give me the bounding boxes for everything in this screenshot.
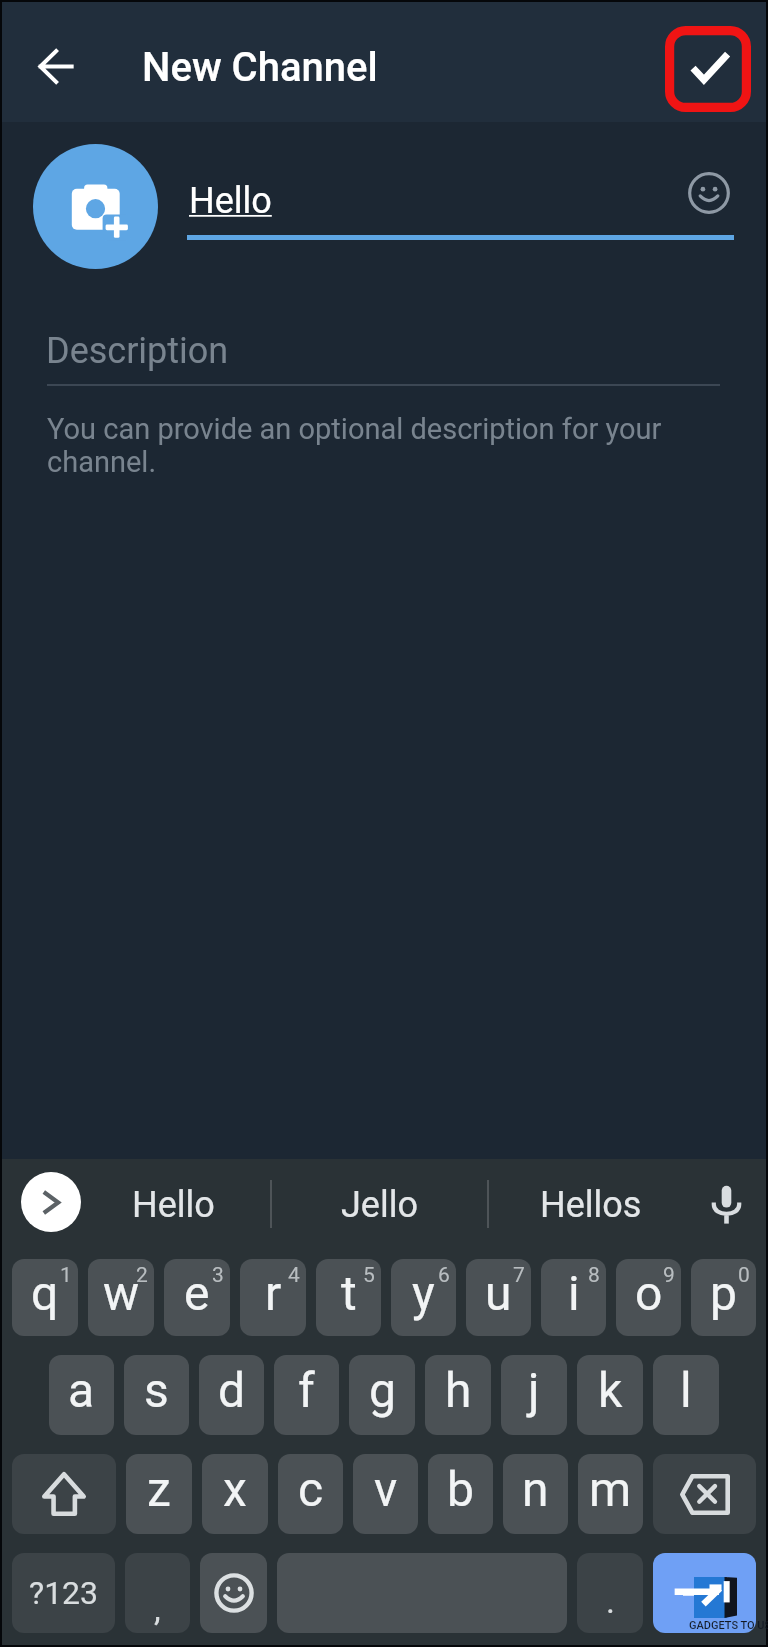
staticText: ?123 bbox=[29, 1574, 99, 1612]
staticText: 2 bbox=[136, 1263, 148, 1288]
staticText: q bbox=[31, 1265, 59, 1321]
button[interactable]: v bbox=[353, 1454, 418, 1534]
staticText: 3 bbox=[212, 1263, 224, 1288]
button[interactable]: Set channel photo bbox=[33, 144, 158, 269]
button[interactable]: w bbox=[88, 1259, 154, 1336]
button[interactable]: Emoji bbox=[200, 1553, 267, 1633]
staticText: . bbox=[606, 1581, 615, 1621]
staticText: 1 bbox=[60, 1263, 72, 1288]
staticText: m bbox=[589, 1461, 632, 1517]
staticText: h bbox=[445, 1362, 472, 1418]
staticText: Hello bbox=[189, 180, 272, 222]
staticText: p bbox=[710, 1265, 737, 1321]
staticText: You can provide an optional description … bbox=[47, 412, 672, 479]
button[interactable]: i bbox=[541, 1259, 606, 1336]
button[interactable]: h bbox=[425, 1355, 491, 1435]
staticText: i bbox=[568, 1265, 580, 1321]
staticText: 5 bbox=[363, 1263, 375, 1288]
button[interactable]: g bbox=[349, 1355, 415, 1435]
staticText: Hello bbox=[132, 1184, 215, 1226]
staticText: s bbox=[144, 1362, 169, 1418]
button[interactable]: . bbox=[577, 1553, 643, 1633]
staticText: u bbox=[485, 1265, 512, 1321]
button[interactable]: Emoji bbox=[669, 153, 749, 233]
button[interactable]: Done bbox=[665, 26, 751, 112]
button[interactable]: j bbox=[501, 1355, 567, 1435]
button[interactable]: a bbox=[49, 1355, 114, 1435]
staticText: e bbox=[184, 1265, 210, 1321]
button[interactable]: Backspace bbox=[653, 1454, 756, 1534]
staticText: a bbox=[68, 1362, 95, 1418]
button[interactable]: Hello bbox=[76, 1159, 270, 1250]
staticText: x bbox=[223, 1461, 247, 1517]
button[interactable]: Hellos bbox=[489, 1159, 693, 1250]
button[interactable]: Shift bbox=[12, 1454, 116, 1534]
button[interactable]: More suggestions bbox=[21, 1172, 81, 1232]
staticText: g bbox=[369, 1362, 396, 1418]
button[interactable]: d bbox=[199, 1355, 264, 1435]
button[interactable]: q bbox=[12, 1259, 78, 1336]
staticText: 7 bbox=[513, 1263, 525, 1288]
staticText: Description bbox=[46, 330, 229, 372]
button[interactable]: Back bbox=[11, 22, 99, 110]
staticText: 0 bbox=[738, 1263, 750, 1288]
staticText: n bbox=[522, 1461, 549, 1517]
staticText: z bbox=[147, 1461, 171, 1517]
button[interactable]: b bbox=[428, 1454, 493, 1534]
staticText: r bbox=[265, 1265, 282, 1321]
button[interactable]: f bbox=[274, 1355, 339, 1435]
staticText: j bbox=[528, 1362, 540, 1418]
staticText: w bbox=[103, 1265, 140, 1321]
staticText: , bbox=[154, 1589, 161, 1629]
staticText: d bbox=[218, 1362, 246, 1418]
button[interactable]: u bbox=[466, 1259, 531, 1336]
staticText: Jello bbox=[341, 1184, 418, 1226]
button[interactable]: c bbox=[278, 1454, 343, 1534]
staticText: c bbox=[298, 1461, 324, 1517]
button[interactable]: s bbox=[124, 1355, 189, 1435]
staticText: l bbox=[680, 1362, 692, 1418]
button[interactable]: n bbox=[503, 1454, 568, 1534]
staticText: 6 bbox=[438, 1263, 450, 1288]
button[interactable]: k bbox=[577, 1355, 643, 1435]
staticText: f bbox=[298, 1362, 315, 1418]
button[interactable]: Voice input bbox=[686, 1159, 766, 1250]
button[interactable]: , bbox=[125, 1553, 190, 1633]
button[interactable]: z bbox=[126, 1454, 192, 1534]
button[interactable]: p bbox=[691, 1259, 756, 1336]
staticText: 4 bbox=[288, 1263, 300, 1288]
staticText: o bbox=[635, 1265, 663, 1321]
staticText: t bbox=[341, 1265, 357, 1321]
staticText: b bbox=[447, 1461, 474, 1517]
staticText: 9 bbox=[663, 1263, 675, 1288]
button[interactable]: e bbox=[164, 1259, 230, 1336]
staticText: v bbox=[374, 1461, 398, 1517]
button[interactable]: o bbox=[616, 1259, 681, 1336]
button[interactable]: m bbox=[578, 1454, 643, 1534]
button[interactable]: ?123 bbox=[12, 1553, 115, 1633]
staticText: Hellos bbox=[540, 1184, 642, 1226]
staticText: New Channel bbox=[142, 44, 378, 91]
button[interactable]: r bbox=[240, 1259, 306, 1336]
button[interactable]: Enter bbox=[653, 1553, 756, 1633]
button[interactable]: t bbox=[316, 1259, 381, 1336]
button[interactable]: Jello bbox=[272, 1159, 487, 1250]
button[interactable]: y bbox=[391, 1259, 456, 1336]
staticText: 8 bbox=[588, 1263, 600, 1288]
staticText: k bbox=[598, 1362, 623, 1418]
button[interactable]: l bbox=[653, 1355, 719, 1435]
staticText: GADGETS TO USE bbox=[689, 1619, 768, 1632]
button[interactable]: x bbox=[202, 1454, 268, 1534]
staticText: y bbox=[412, 1265, 435, 1321]
